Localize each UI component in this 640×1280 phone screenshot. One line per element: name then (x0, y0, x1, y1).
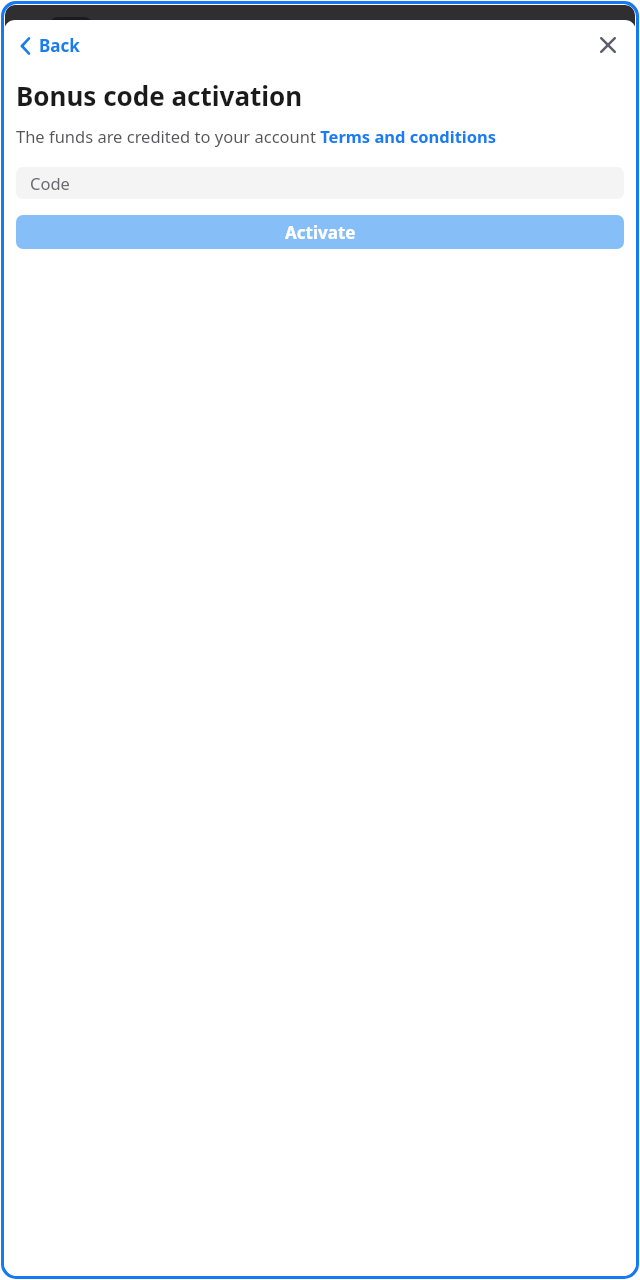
staticText: App (102, 17, 127, 35)
button[interactable]: Close (592, 29, 624, 61)
button[interactable]: Code (16, 167, 624, 199)
staticText: Code (30, 172, 70, 194)
button[interactable]: The funds are credited to your account T… (16, 125, 497, 147)
staticText: Activate (285, 221, 356, 244)
staticText: Bonus code activation (16, 78, 303, 113)
button[interactable]: Back (14, 28, 86, 63)
button[interactable]: Activate (16, 215, 624, 249)
staticText: Back (39, 34, 80, 57)
